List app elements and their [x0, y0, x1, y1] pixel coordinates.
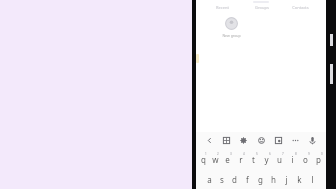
staticText: o: [303, 154, 308, 165]
button[interactable]: Contacts: [281, 0, 320, 14]
button[interactable]: j: [280, 169, 293, 189]
staticText: 2: [217, 152, 219, 156]
button[interactable]: 0: [312, 149, 325, 169]
button[interactable]: 9: [299, 149, 312, 169]
button[interactable]: Stickers: [255, 134, 268, 147]
button[interactable]: 5: [247, 149, 260, 169]
staticText: e: [225, 154, 230, 165]
button[interactable]: 7: [273, 149, 286, 169]
staticText: h: [271, 174, 276, 185]
button[interactable]: 1: [197, 149, 209, 169]
staticText: 5: [256, 152, 258, 156]
staticText: 8: [295, 152, 297, 156]
staticText: k: [297, 174, 302, 185]
button[interactable]: Settings: [237, 134, 250, 147]
staticText: 7: [282, 152, 284, 156]
staticText: l: [311, 174, 314, 185]
staticText: y: [264, 154, 269, 165]
staticText: a: [207, 174, 212, 185]
button[interactable]: 4: [234, 149, 247, 169]
button[interactable]: l: [306, 169, 319, 189]
staticText: s: [220, 174, 224, 185]
button[interactable]: Recent: [202, 0, 242, 14]
button[interactable]: g: [254, 169, 267, 189]
staticText: w: [212, 154, 219, 165]
button[interactable]: s: [215, 169, 228, 189]
button[interactable]: 2: [209, 149, 221, 169]
button[interactable]: k: [293, 169, 306, 189]
staticText: Recent: [216, 5, 229, 10]
staticText: u: [277, 154, 282, 165]
staticText: p: [316, 154, 321, 165]
staticText: g: [258, 174, 263, 185]
button[interactable]: a: [203, 169, 215, 189]
button[interactable]: New group: [212, 17, 250, 38]
button[interactable]: 6: [260, 149, 273, 169]
staticText: 6: [269, 152, 271, 156]
staticText: i: [291, 154, 294, 165]
button[interactable]: 8: [286, 149, 299, 169]
staticText: 4: [243, 152, 245, 156]
button[interactable]: Groups: [242, 0, 281, 14]
staticText: Groups: [255, 5, 269, 10]
staticText: 9: [308, 152, 310, 156]
staticText: Contacts: [292, 5, 309, 10]
button[interactable]: d: [228, 169, 241, 189]
button[interactable]: Clipboard: [220, 134, 233, 147]
staticText: 3: [230, 152, 232, 156]
button[interactable]: Voice input: [306, 134, 319, 147]
staticText: 0: [321, 152, 323, 156]
button[interactable]: Back: [203, 134, 216, 147]
button[interactable]: h: [267, 169, 280, 189]
staticText: t: [252, 154, 255, 165]
staticText: f: [246, 174, 249, 185]
button[interactable]: GIF: [272, 134, 285, 147]
button[interactable]: More options: [289, 134, 302, 147]
staticText: q: [201, 154, 206, 165]
staticText: New group: [222, 33, 241, 38]
staticText: d: [232, 174, 237, 185]
staticText: r: [239, 154, 243, 165]
staticText: j: [285, 174, 288, 185]
staticText: 1: [205, 152, 207, 156]
button[interactable]: f: [241, 169, 254, 189]
button[interactable]: 3: [221, 149, 234, 169]
